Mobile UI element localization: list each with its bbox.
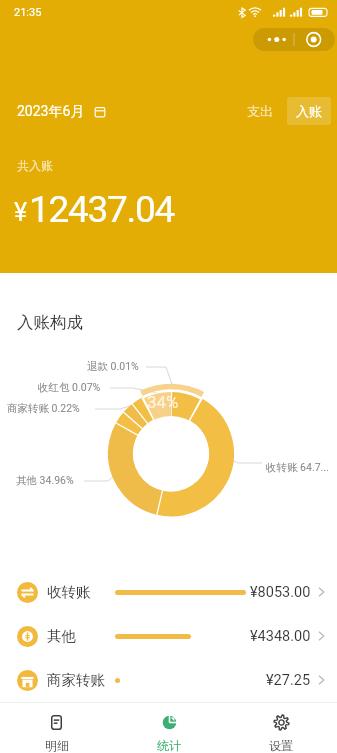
- staticText: 其他: [47, 627, 76, 645]
- button[interactable]: 统计: [113, 703, 225, 753]
- button[interactable]: 2023年6月: [17, 103, 106, 121]
- staticText: ¥4348.00: [250, 628, 311, 645]
- staticText: 入账构成: [17, 312, 83, 333]
- staticText: 21:35: [14, 6, 42, 19]
- staticText: 商家转账: [47, 671, 105, 689]
- staticText: 明细: [45, 738, 69, 753]
- staticText: 退款 0.01%: [87, 360, 139, 373]
- staticText: 入账: [296, 103, 322, 119]
- button[interactable]: 其他: [0, 614, 337, 658]
- staticText: ¥27.25: [266, 672, 311, 689]
- staticText: 其他 34.96%: [16, 474, 74, 487]
- staticText: 设置: [269, 738, 293, 753]
- button[interactable]: 设置: [225, 703, 337, 753]
- staticText: ¥: [14, 198, 28, 227]
- staticText: ¥8053.00: [250, 584, 311, 601]
- staticText: 12437.04: [29, 188, 174, 231]
- staticText: 收转账: [47, 583, 91, 601]
- staticText: 统计: [157, 738, 181, 753]
- button[interactable]: 入账: [287, 97, 331, 125]
- staticText: 34%: [147, 392, 179, 412]
- button[interactable]: 收转账: [0, 570, 337, 614]
- staticText: 收红包 0.07%: [38, 381, 101, 394]
- staticText: 共入账: [17, 158, 53, 173]
- staticText: 2023年6月: [17, 103, 85, 121]
- staticText: 支出: [247, 103, 273, 119]
- button[interactable]: 商家转账: [0, 658, 337, 702]
- button[interactable]: 明细: [0, 703, 113, 753]
- staticText: 商家转账 0.22%: [7, 402, 80, 415]
- staticText: 收转账 64.7...: [266, 461, 329, 474]
- button[interactable]: Mini window controls: [253, 28, 335, 51]
- button[interactable]: 支出: [238, 97, 282, 125]
